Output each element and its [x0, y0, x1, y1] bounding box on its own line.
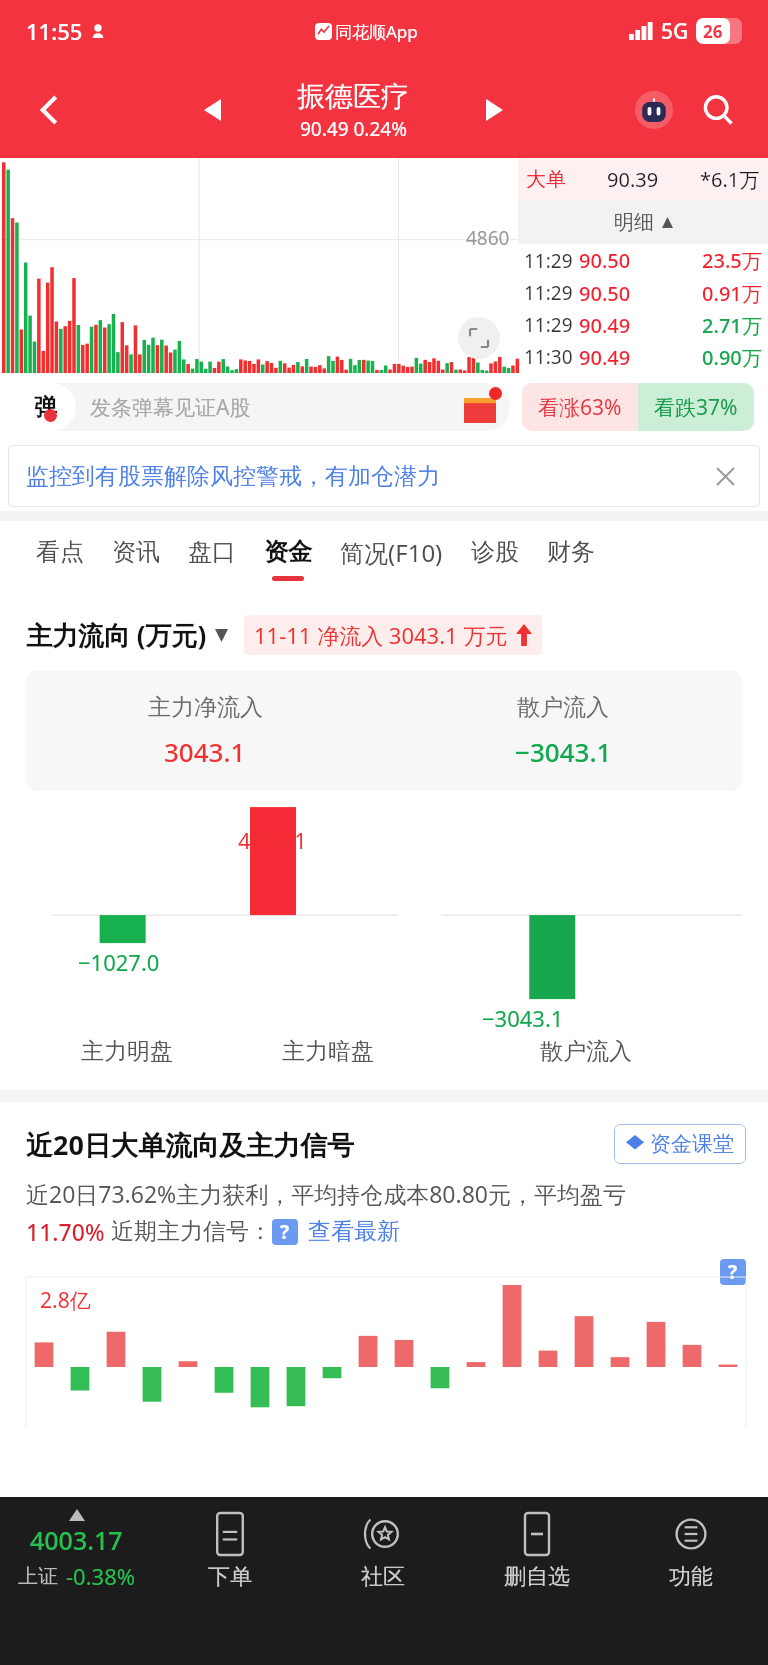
staticText: 功能: [669, 1563, 713, 1591]
button[interactable]: 盘口: [174, 537, 250, 581]
button[interactable]: 简况(F10): [326, 536, 457, 583]
staticText: 社区: [361, 1563, 405, 1591]
staticText: 11:30: [524, 344, 573, 370]
staticText: 90.49: [579, 344, 631, 371]
staticText: 近20日73.62%主力获利，平均持仓成本80.80元，平均盈亏: [26, 1178, 627, 1209]
staticText: 主力暗盘: [282, 1037, 374, 1066]
button[interactable]: Close: [708, 459, 742, 493]
staticText: 90.50: [579, 280, 631, 307]
staticText: 财务: [547, 537, 595, 567]
button[interactable]: 资金课堂: [626, 1131, 734, 1157]
staticText: 看涨63%: [538, 393, 622, 422]
staticText: 23.5万: [702, 247, 762, 274]
button[interactable]: 功能: [614, 1513, 768, 1591]
staticText: 11.70%: [26, 1216, 105, 1247]
staticText: 近期主力信号：: [111, 1217, 272, 1246]
button[interactable]: Chart help: [720, 1259, 746, 1285]
staticText: 0.91万: [702, 280, 762, 307]
staticText: 4003.17: [30, 1523, 123, 1557]
staticText: 下单: [208, 1563, 252, 1591]
staticText: 盘口: [188, 537, 236, 567]
staticText: 明细: [614, 210, 654, 235]
staticText: 5G: [661, 17, 689, 46]
button[interactable]: AI assistant: [628, 84, 680, 136]
staticText: 近20日大单流向及主力信号: [26, 1126, 354, 1163]
staticText: 3043.1: [164, 734, 246, 769]
staticText: 0.90万: [702, 344, 762, 371]
button[interactable]: Fullscreen: [458, 317, 500, 359]
button[interactable]: 看跌37%: [638, 383, 754, 431]
button[interactable]: Help: [272, 1219, 298, 1245]
button[interactable]: 4003.17: [0, 1509, 153, 1591]
staticText: 看点: [36, 537, 84, 567]
staticText: 资金课堂: [650, 1131, 734, 1157]
button[interactable]: 下单: [153, 1513, 306, 1591]
staticText: 90.49 0.24%: [300, 116, 407, 142]
button[interactable]: 主力流向 (万元): [26, 617, 228, 653]
staticText: 11-11 净流入 3043.1 万元: [254, 620, 508, 650]
staticText: 11:55: [26, 16, 83, 46]
staticText: 11:29: [524, 312, 573, 338]
staticText: 大单: [526, 167, 566, 192]
staticText: 主力明盘: [81, 1037, 173, 1066]
staticText: 2.71万: [702, 312, 762, 339]
button[interactable]: 资金: [250, 537, 326, 581]
staticText: 上证: [18, 1564, 58, 1589]
staticText: 发条弹幕见证A股: [90, 393, 251, 422]
staticText: 主力净流入: [148, 693, 263, 722]
staticText: -0.38%: [66, 1561, 136, 1591]
staticText: 散户流入: [517, 693, 609, 722]
staticText: ?: [280, 1219, 290, 1245]
staticText: 11:29: [524, 248, 573, 274]
button[interactable]: 查看最新: [308, 1217, 400, 1246]
staticText: 同花顺App: [335, 20, 418, 43]
button[interactable]: 看涨63%: [522, 383, 638, 431]
staticText: *6.1万: [700, 166, 760, 193]
staticText: 2.8亿: [40, 1286, 91, 1315]
button[interactable]: 看点: [22, 537, 98, 581]
button[interactable]: Previous stock: [186, 84, 238, 136]
button[interactable]: 删自选: [460, 1513, 614, 1591]
staticText: 4860: [466, 225, 510, 251]
button[interactable]: 诊股: [457, 537, 533, 581]
button[interactable]: Search: [690, 82, 746, 138]
staticText: 26: [703, 20, 723, 43]
staticText: 弹: [34, 393, 57, 422]
staticText: 看跌37%: [654, 393, 738, 422]
staticText: 诊股: [471, 537, 519, 567]
staticText: ?: [728, 1259, 738, 1285]
button[interactable]: 资讯: [98, 537, 174, 581]
button[interactable]: 监控到有股票解除风控警戒，有加仓潜力: [26, 445, 742, 507]
button[interactable]: 弹: [14, 383, 510, 431]
button[interactable]: Back: [22, 82, 78, 138]
staticText: 90.50: [579, 247, 631, 274]
button[interactable]: 明细: [518, 200, 768, 244]
staticText: 90.39: [607, 166, 659, 193]
staticText: −3043.1: [482, 1003, 564, 1033]
button[interactable]: Next stock: [468, 84, 520, 136]
staticText: 主力流向 (万元): [26, 617, 207, 653]
button[interactable]: 社区: [306, 1513, 460, 1591]
staticText: 监控到有股票解除风控警戒，有加仓潜力: [26, 462, 440, 491]
staticText: 4070.1: [238, 825, 307, 855]
staticText: −3043.1: [515, 734, 612, 769]
staticText: 简况(F10): [340, 536, 443, 569]
staticText: 资讯: [112, 537, 160, 567]
button[interactable]: 11-11 净流入 3043.1 万元: [254, 620, 532, 650]
staticText: 资金: [264, 537, 312, 567]
staticText: 11:29: [524, 280, 573, 306]
button[interactable]: 财务: [533, 537, 609, 581]
staticText: 振德医疗: [297, 79, 409, 114]
staticText: 90.49: [579, 312, 631, 339]
staticText: −1027.0: [78, 947, 160, 977]
staticText: 删自选: [504, 1563, 570, 1591]
staticText: 散户流入: [540, 1037, 632, 1066]
